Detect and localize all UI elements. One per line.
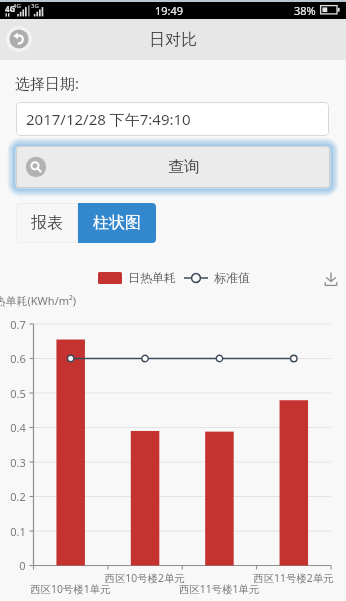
staticText: 查询: [168, 157, 200, 177]
staticText: 4G: [13, 2, 21, 10]
staticText: 3G: [31, 2, 39, 10]
staticText: 标准值: [214, 270, 250, 285]
staticText: 38%: [294, 3, 316, 18]
button[interactable]: Download: [324, 272, 338, 286]
staticText: 4G: [5, 3, 16, 14]
staticText: 日对比: [149, 30, 197, 50]
button[interactable]: 报表: [16, 203, 78, 243]
button[interactable]: Back: [5, 25, 33, 53]
button[interactable]: 查询: [16, 146, 330, 188]
staticText: 19:49: [155, 3, 184, 18]
staticText: 选择日期:: [15, 73, 80, 93]
staticText: 柱状图: [93, 213, 141, 233]
button[interactable]: 柱状图: [78, 203, 156, 243]
staticText: 日热单耗: [128, 270, 176, 285]
staticText: 报表: [31, 213, 63, 233]
button[interactable]: 2017/12/28 下午7:49:10: [16, 102, 329, 136]
staticText: 2017/12/28 下午7:49:10: [26, 109, 191, 129]
